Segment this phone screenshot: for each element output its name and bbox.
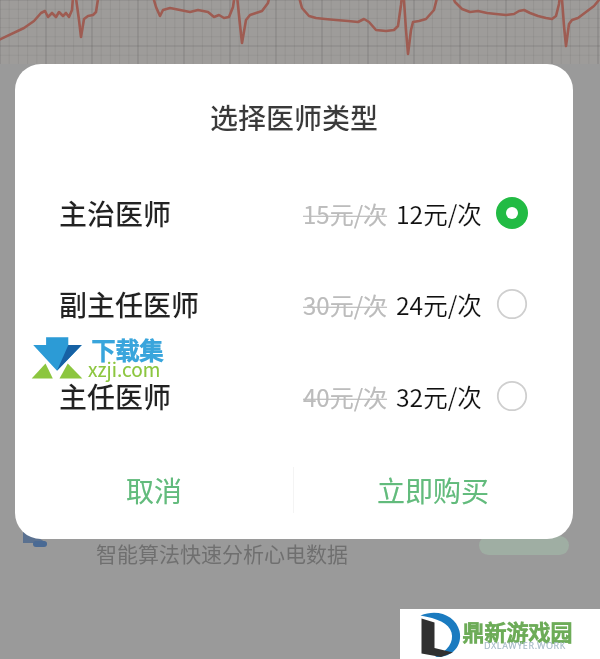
- staticText: 取消: [126, 470, 183, 511]
- staticText: 副主任医师: [59, 284, 200, 325]
- staticText: 智能算法快速分析心电数据: [96, 538, 348, 568]
- button[interactable]: 主任医师: [15, 369, 573, 423]
- staticText: 主治医师: [59, 193, 172, 234]
- staticText: 30元/次: [303, 287, 388, 322]
- staticText: 选择医师类型: [210, 97, 379, 131]
- staticText: 15元/次: [303, 196, 388, 231]
- button[interactable]: 主治医师: [15, 186, 573, 240]
- button[interactable]: 副主任医师: [15, 277, 573, 331]
- staticText: 40元/次: [303, 379, 388, 414]
- staticText: DXLAWYER.WORK: [484, 639, 566, 651]
- button[interactable]: 立即购买: [294, 460, 573, 520]
- button[interactable]: 取消: [15, 460, 293, 520]
- staticText: 立即购买: [377, 470, 490, 511]
- staticText: 下载集: [91, 332, 163, 367]
- staticText: 32元/次: [396, 379, 482, 414]
- staticText: 鼎新游戏园: [462, 615, 573, 647]
- staticText: xzji.com: [88, 355, 161, 383]
- staticText: 主任医师: [59, 376, 172, 417]
- staticText: 24元/次: [396, 287, 482, 322]
- staticText: 12元/次: [396, 196, 482, 231]
